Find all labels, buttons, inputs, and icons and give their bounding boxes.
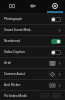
staticText: Anti Flicker [4,83,48,87]
button[interactable]: Camera Assist [0,69,65,79]
button[interactable]: Off [51,17,61,22]
button[interactable]: Photo settings [1,0,22,13]
other: Open [58,62,61,65]
staticText: Camera Assist [4,72,48,76]
staticText: Video Caption [4,50,51,54]
button[interactable]: Pic Index Mode [0,91,65,100]
button[interactable]: Anti Flicker [0,80,65,90]
button[interactable]: Photograph [0,14,65,24]
staticText: Smart Scene Mod.. [4,28,58,32]
button[interactable]: Smart Scene Mod.. [0,25,65,35]
staticText: Pic Index Mode [4,94,40,98]
button[interactable]: Video Caption [0,47,65,57]
button[interactable]: Grid [0,58,65,68]
button[interactable]: Off [51,50,61,55]
other: Open [58,29,61,32]
other: Open [58,84,61,87]
button[interactable]: Video settings [22,0,43,13]
button[interactable]: General settings [44,0,65,13]
staticText: Photograph [4,17,51,21]
button[interactable]: On [51,39,61,44]
staticText: Grid [4,61,48,65]
button[interactable]: Numbered [0,36,65,46]
other: Open [58,73,61,76]
staticText: Numbered [4,39,51,43]
